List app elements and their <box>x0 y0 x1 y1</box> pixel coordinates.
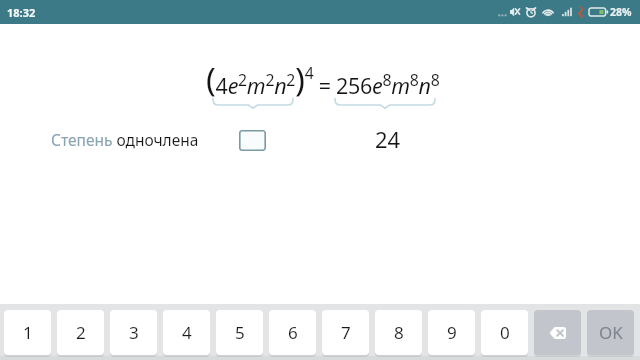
staticText: 6 <box>288 321 298 344</box>
button[interactable]: 7 <box>322 310 369 355</box>
staticText: 1 <box>23 321 33 344</box>
button[interactable]: 6 <box>269 310 316 355</box>
staticText: (4e2m2n2)4 = 256e8m8n8 <box>206 57 440 102</box>
button[interactable]: 5 <box>216 310 263 355</box>
button[interactable]: 8 <box>375 310 422 355</box>
button[interactable]: 1 <box>4 310 51 355</box>
staticText: Степень одночлена <box>51 129 199 150</box>
button[interactable]: 2 <box>57 310 104 355</box>
staticText: 7 <box>341 321 351 344</box>
button[interactable]: Backspace <box>534 310 581 355</box>
button[interactable]: Answer input <box>239 130 266 151</box>
staticText: 8 <box>394 321 404 344</box>
button[interactable]: 3 <box>110 310 157 355</box>
staticText: 9 <box>447 321 457 344</box>
button[interactable]: 4 <box>163 310 210 355</box>
staticText: 28% <box>610 5 632 19</box>
button[interactable]: OK <box>587 310 634 355</box>
staticText: 5 <box>235 321 245 344</box>
staticText: OK <box>599 321 623 344</box>
staticText: 18:32 <box>7 5 36 20</box>
button[interactable]: 0 <box>481 310 528 355</box>
staticText: 0 <box>500 321 510 344</box>
staticText: 3 <box>129 321 139 344</box>
button[interactable]: 9 <box>428 310 475 355</box>
staticText: 24 <box>375 124 401 154</box>
staticText: 2 <box>76 321 86 344</box>
staticText: 4 <box>182 321 192 344</box>
